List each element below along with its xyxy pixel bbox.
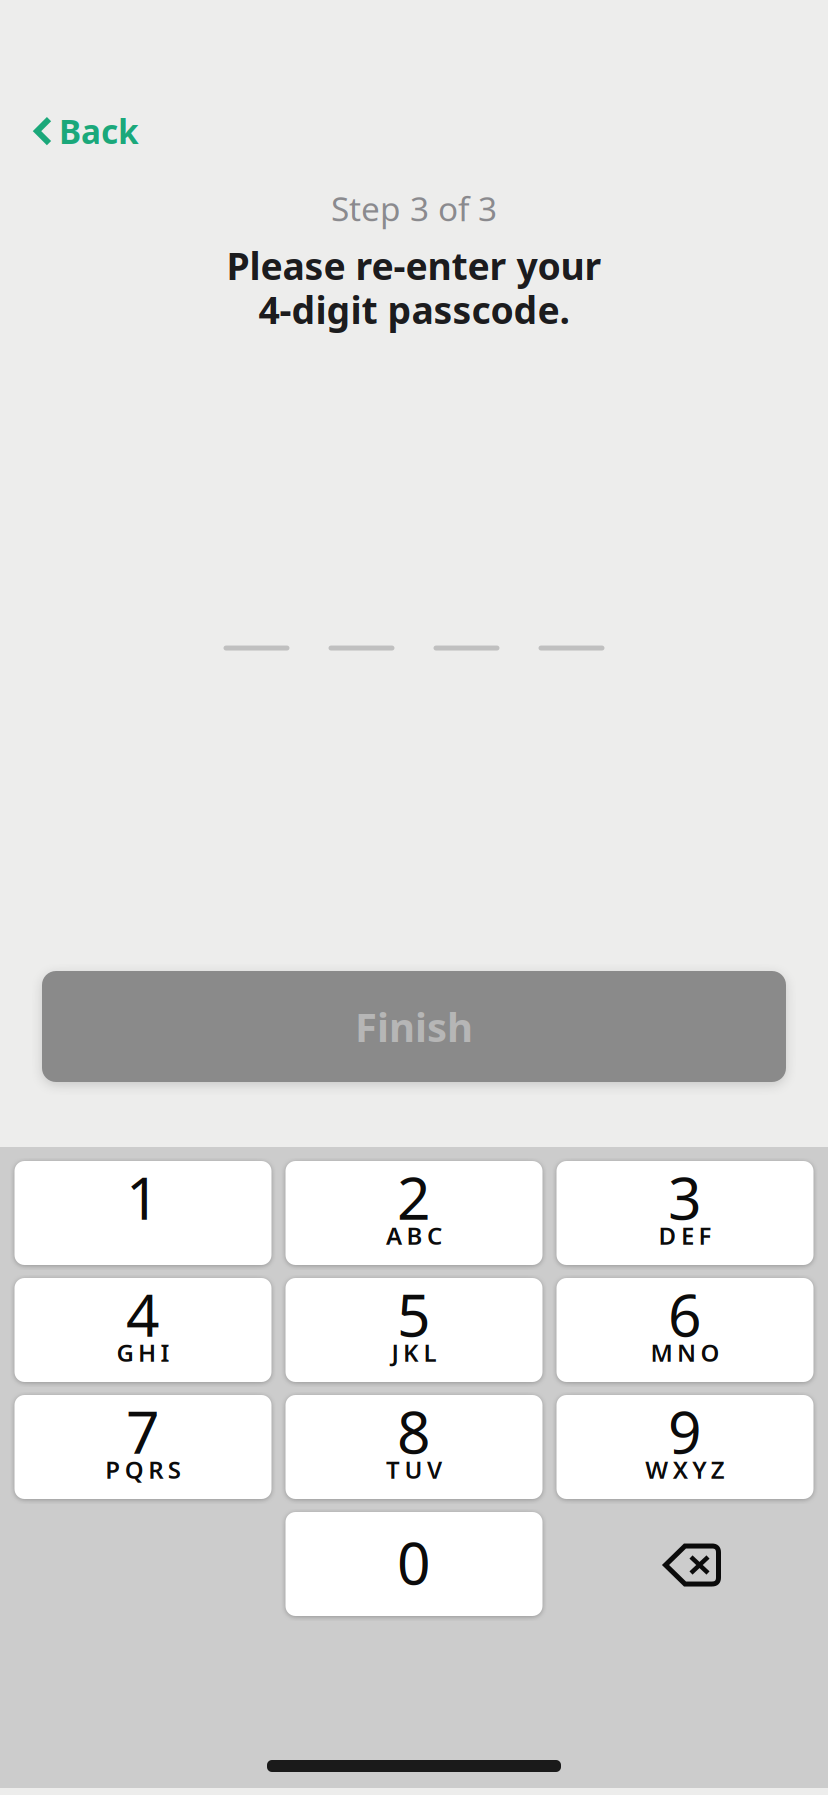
button[interactable]: 7 — [14, 1395, 271, 1499]
button[interactable]: Delete — [556, 1512, 813, 1616]
staticText: S — [168, 1454, 181, 1485]
staticText: A — [386, 1220, 402, 1251]
staticText: 6 — [668, 1275, 702, 1353]
staticText: F — [698, 1220, 711, 1251]
button[interactable]: 8 — [285, 1395, 542, 1499]
staticText: 9 — [668, 1392, 702, 1470]
staticText: C — [427, 1220, 442, 1251]
staticText: 2 — [397, 1158, 431, 1236]
staticText: O — [700, 1337, 719, 1368]
staticText: N — [677, 1337, 696, 1368]
staticText: D — [658, 1220, 676, 1251]
staticText: J — [391, 1337, 398, 1368]
button[interactable]: 4 — [14, 1278, 271, 1382]
staticText: Step 3 of 3 — [331, 186, 497, 231]
staticText: B — [406, 1220, 422, 1251]
staticText: Q — [125, 1454, 144, 1485]
button[interactable]: Finish — [42, 971, 786, 1082]
staticText: Y — [692, 1454, 706, 1485]
staticText: 0 — [397, 1523, 431, 1601]
button[interactable]: 1 — [14, 1161, 271, 1265]
staticText: L — [423, 1337, 436, 1368]
staticText: 7 — [126, 1392, 160, 1470]
staticText: Finish — [355, 1000, 473, 1053]
staticText: X — [673, 1454, 688, 1485]
button[interactable]: 5 — [285, 1278, 542, 1382]
staticText: 4 — [126, 1275, 160, 1353]
staticText: 8 — [397, 1392, 431, 1470]
staticText: U — [404, 1454, 422, 1485]
button[interactable]: 3 — [556, 1161, 813, 1265]
staticText: Back — [59, 109, 139, 153]
staticText: M — [650, 1337, 672, 1368]
staticText: E — [681, 1220, 694, 1251]
button[interactable]: 6 — [556, 1278, 813, 1382]
staticText: Please re-enter your — [226, 241, 601, 290]
staticText: G — [116, 1337, 133, 1368]
staticText: Z — [711, 1454, 725, 1485]
staticText: T — [386, 1454, 400, 1485]
staticText: I — [160, 1337, 169, 1368]
staticText: 4-digit passcode. — [258, 285, 569, 334]
staticText: W — [645, 1454, 668, 1485]
staticText: V — [427, 1454, 442, 1485]
button[interactable]: 0 — [285, 1512, 542, 1616]
button[interactable]: Back — [0, 99, 153, 163]
staticText: 5 — [397, 1275, 431, 1353]
button[interactable]: 9 — [556, 1395, 813, 1499]
staticText: H — [138, 1337, 156, 1368]
staticText: R — [148, 1454, 163, 1485]
button[interactable]: 2 — [285, 1161, 542, 1265]
staticText: 1 — [126, 1158, 160, 1236]
staticText: K — [403, 1337, 419, 1368]
staticText: 3 — [668, 1158, 702, 1236]
staticText: P — [105, 1454, 120, 1485]
